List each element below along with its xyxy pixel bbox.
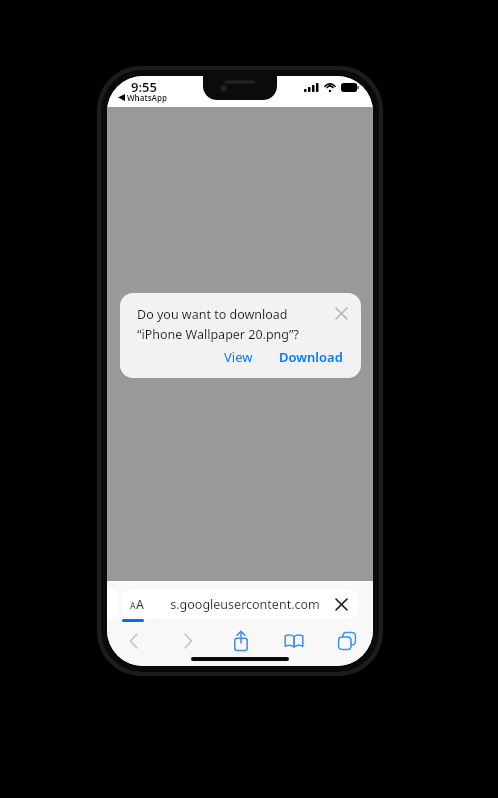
staticText: View — [224, 348, 253, 366]
staticText: “iPhone Wallpaper 20.png”? — [137, 326, 299, 343]
staticText: 9:55 — [131, 78, 157, 96]
button[interactable]: Back — [107, 626, 161, 656]
button[interactable]: Bookmarks — [267, 626, 320, 656]
button[interactable]: Text size options — [122, 589, 358, 619]
button[interactable]: Tabs — [320, 626, 373, 656]
button[interactable]: View — [220, 346, 257, 368]
staticText: Download — [279, 348, 343, 366]
button[interactable]: Close — [330, 302, 352, 324]
staticText: s.googleusercontent.com — [170, 596, 320, 613]
button[interactable]: Forward — [161, 626, 214, 656]
button[interactable]: Stop loading — [331, 594, 351, 614]
button[interactable]: Share — [214, 626, 267, 656]
staticText: WhatsApp — [127, 92, 167, 103]
button[interactable]: Text size options — [130, 596, 144, 612]
staticText: A — [136, 596, 144, 612]
button[interactable]: Download — [275, 346, 347, 368]
staticText: A — [130, 600, 136, 612]
staticText: Do you want to download — [137, 306, 288, 323]
